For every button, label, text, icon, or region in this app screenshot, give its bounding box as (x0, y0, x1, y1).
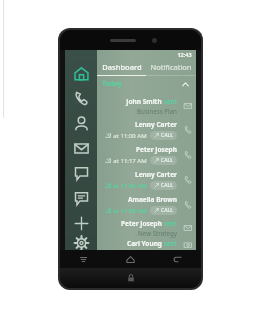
button[interactable]: Mail (180, 217, 196, 239)
button[interactable]: Messages (65, 186, 97, 211)
button[interactable]: Call (180, 142, 196, 167)
button[interactable]: Call (180, 117, 196, 142)
button[interactable]: Collapse (179, 78, 191, 90)
button[interactable]: Attachment (180, 239, 196, 250)
button[interactable]: Peter Joseph (97, 217, 196, 239)
staticText: Peter Joseph (136, 145, 177, 154)
button[interactable]: Settings (65, 236, 97, 250)
staticText: Amaelia Brown (128, 195, 177, 204)
staticText: CALL (161, 132, 173, 139)
button[interactable]: Call (180, 192, 196, 217)
button[interactable]: Lenny Carter (97, 117, 196, 142)
staticText: Notification (150, 62, 192, 72)
staticText: at 11:17 AM (113, 157, 147, 165)
button[interactable]: Amaelia Brown (97, 192, 196, 217)
staticText: sent (162, 97, 177, 106)
button[interactable]: CALL (154, 182, 173, 189)
staticText: Lenny Carter (135, 120, 177, 129)
button[interactable]: Lenny Carter (97, 167, 196, 192)
button[interactable]: CALL (154, 132, 173, 139)
staticText: at 11:40 AM (113, 182, 147, 190)
button[interactable]: CALL (154, 207, 173, 214)
staticText: John Smith (126, 97, 162, 106)
button[interactable]: Contacts (65, 111, 97, 136)
button[interactable]: Dashboard (97, 59, 146, 75)
button[interactable]: Recents (60, 250, 107, 268)
staticText: 12:43 (177, 51, 192, 58)
button[interactable]: Home (107, 250, 154, 268)
button[interactable]: Carl Young (97, 239, 196, 250)
staticText: at 11:58 AM (113, 207, 147, 215)
staticText: Lenny Carter (135, 170, 177, 179)
button[interactable]: Home (65, 61, 97, 86)
staticText: at 11:00 AM (113, 132, 147, 140)
staticText: CALL (161, 157, 173, 164)
button[interactable]: Calls (65, 86, 97, 111)
staticText: Business Plan (137, 107, 177, 115)
staticText: Dashboard (102, 62, 142, 72)
staticText: Carl Young (127, 239, 162, 248)
button[interactable]: Call (180, 167, 196, 192)
staticText: CALL (161, 207, 173, 214)
button[interactable]: CALL (154, 157, 173, 164)
staticText: sent (162, 239, 177, 248)
staticText: sent (162, 219, 177, 228)
button[interactable]: John Smith (97, 95, 196, 117)
button[interactable]: Mail (180, 95, 196, 117)
staticText: New Strategy (138, 229, 177, 237)
staticText: CALL (161, 182, 173, 189)
button[interactable]: Peter Joseph (97, 142, 196, 167)
staticText: Peter Joseph (121, 219, 162, 228)
button[interactable]: Mail (65, 136, 97, 161)
staticText: Today (102, 79, 122, 89)
button[interactable]: Back (154, 250, 201, 268)
button[interactable]: Notification (146, 59, 196, 75)
button[interactable]: Add (65, 211, 97, 236)
button[interactable]: Chat (65, 161, 97, 186)
